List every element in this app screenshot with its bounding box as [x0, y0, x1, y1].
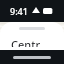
staticText: 9:41: [10, 5, 28, 17]
button[interactable]: My location: [34, 22, 56, 42]
button[interactable]: Central Station: [0, 34, 64, 50]
staticText: Central Station: [11, 37, 53, 47]
